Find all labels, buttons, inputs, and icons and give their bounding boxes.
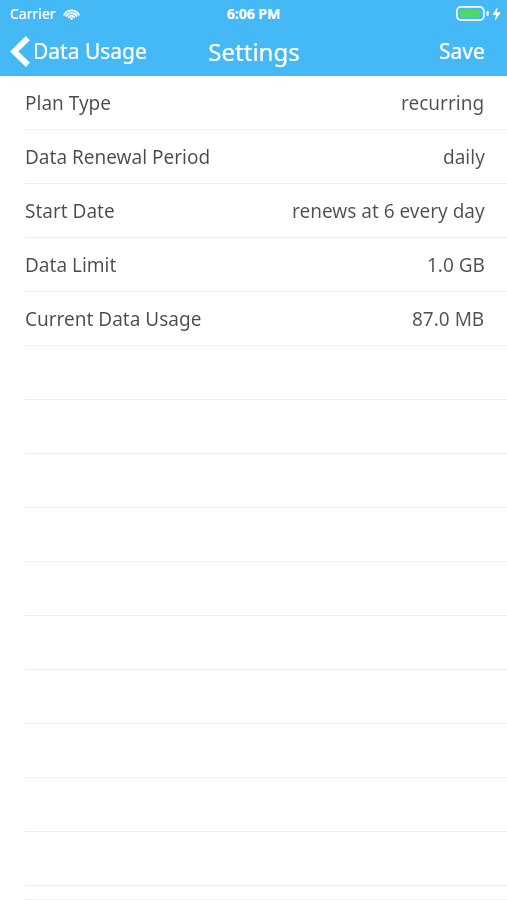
staticText: Data Limit	[25, 252, 117, 278]
staticText: Carrier	[10, 4, 56, 23]
staticText: renews at 6 every day	[292, 198, 485, 224]
staticText: 1.0 GB	[427, 252, 485, 278]
staticText: Current Data Usage	[25, 306, 202, 332]
staticText: Settings	[208, 35, 300, 68]
button[interactable]: Data Renewal Period	[0, 130, 507, 184]
button[interactable]: Start Date	[0, 184, 507, 238]
staticText: 87.0 MB	[412, 306, 485, 332]
button[interactable]: Data Limit	[0, 238, 507, 292]
staticText: daily	[443, 144, 485, 170]
staticText: Plan Type	[25, 90, 112, 116]
button[interactable]: Save	[425, 29, 507, 74]
staticText: recurring	[401, 90, 485, 116]
staticText: 6:06 PM	[227, 4, 281, 23]
button[interactable]: Data Usage	[0, 31, 157, 72]
staticText: Start Date	[25, 198, 115, 224]
staticText: Save	[439, 37, 485, 66]
staticText: Data Renewal Period	[25, 144, 211, 170]
staticText: Data Usage	[33, 37, 147, 66]
button[interactable]: Plan Type	[0, 76, 507, 130]
button[interactable]: Current Data Usage	[0, 292, 507, 346]
